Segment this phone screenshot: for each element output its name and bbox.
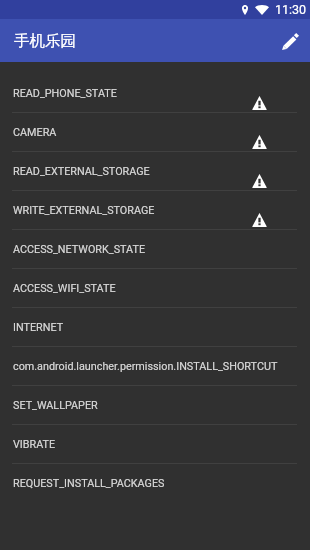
button[interactable]: READ_PHONE_STATE [0,74,310,113]
button[interactable]: VIBRATE [0,425,310,464]
button[interactable]: ACCESS_WIFI_STATE [0,269,310,308]
button[interactable]: ACCESS_NETWORK_STATE [0,230,310,269]
button[interactable]: INTERNET [0,308,310,347]
staticText: CAMERA [13,126,57,139]
staticText: com.android.launcher.permission.INSTALL_… [13,360,278,373]
staticText: READ_PHONE_STATE [13,87,117,100]
button[interactable]: CAMERA [0,113,310,152]
staticText: 11:30 [275,2,307,17]
button[interactable]: WRITE_EXTERNAL_STORAGE [0,191,310,230]
staticText: ACCESS_NETWORK_STATE [13,243,146,256]
button[interactable]: SET_WALLPAPER [0,386,310,425]
staticText: WRITE_EXTERNAL_STORAGE [13,204,155,217]
button[interactable]: READ_EXTERNAL_STORAGE [0,152,310,191]
staticText: INTERNET [13,321,64,334]
staticText: SET_WALLPAPER [13,399,98,412]
staticText: 手机乐园 [14,31,76,51]
staticText: ACCESS_WIFI_STATE [13,282,116,295]
staticText: REQUEST_INSTALL_PACKAGES [13,477,165,490]
button[interactable]: REQUEST_INSTALL_PACKAGES [0,464,310,503]
staticText: READ_EXTERNAL_STORAGE [13,165,150,178]
button[interactable]: Edit [274,25,306,57]
button[interactable]: com.android.launcher.permission.INSTALL_… [0,347,310,386]
staticText: VIBRATE [13,438,56,451]
